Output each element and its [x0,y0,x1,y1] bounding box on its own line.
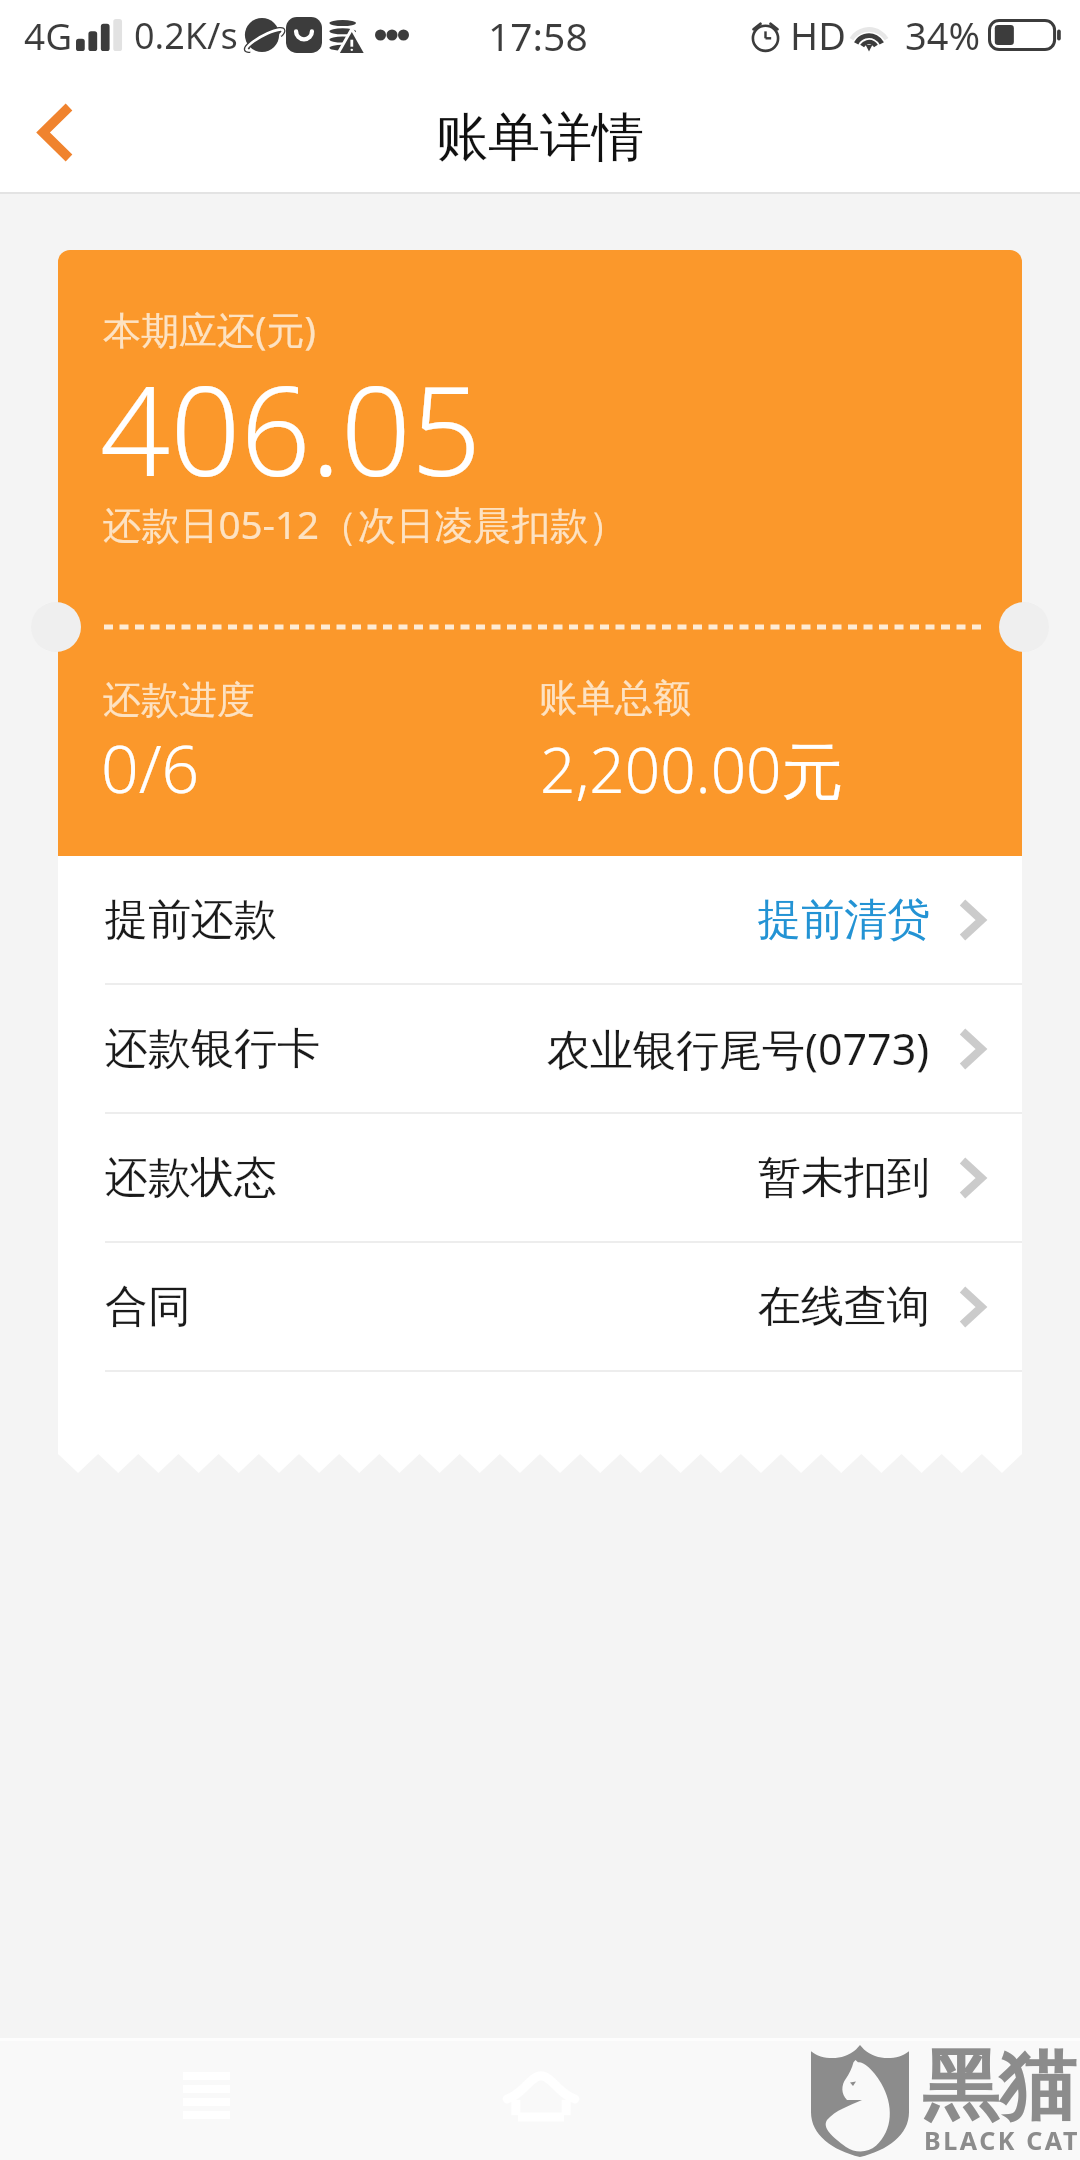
staticText: 提前清贷 [758,893,930,947]
staticText: 提前还款 [105,893,277,947]
staticText: 合同 [105,1280,191,1334]
button[interactable]: 合同 [58,1243,1022,1372]
staticText: HD [790,9,846,61]
staticText: 账单详情 [436,105,644,171]
staticText: 还款日05-12（次日凌晨扣款） [103,498,627,551]
staticText: 406.05 [100,345,482,513]
button[interactable]: 还款状态 [58,1114,1022,1243]
staticText: 账单总额 [539,674,691,722]
button[interactable]: Back [0,88,106,194]
staticText: 农业银行尾号(0773) [547,1019,930,1078]
staticText: 0/6 [101,722,200,812]
staticText: 17:58 [488,9,588,62]
button[interactable]: 还款银行卡 [58,985,1022,1114]
staticText: 黑猫 [922,2038,1076,2135]
staticText: BLACK CAT [924,2123,1080,2157]
staticText: 在线查询 [758,1280,930,1334]
staticText: 还款银行卡 [105,1022,320,1076]
button[interactable]: 提前还款 [58,856,1022,985]
staticText: 4G [24,10,73,60]
staticText: 本期应还(元) [103,303,316,355]
staticText: 还款状态 [105,1151,277,1205]
staticText: 暂未扣到 [758,1151,930,1205]
staticText: 还款进度 [103,676,255,724]
staticText: 0.2K/s [134,11,238,60]
staticText: 34% [905,9,981,61]
staticText: 2,200.00元 [540,727,844,812]
